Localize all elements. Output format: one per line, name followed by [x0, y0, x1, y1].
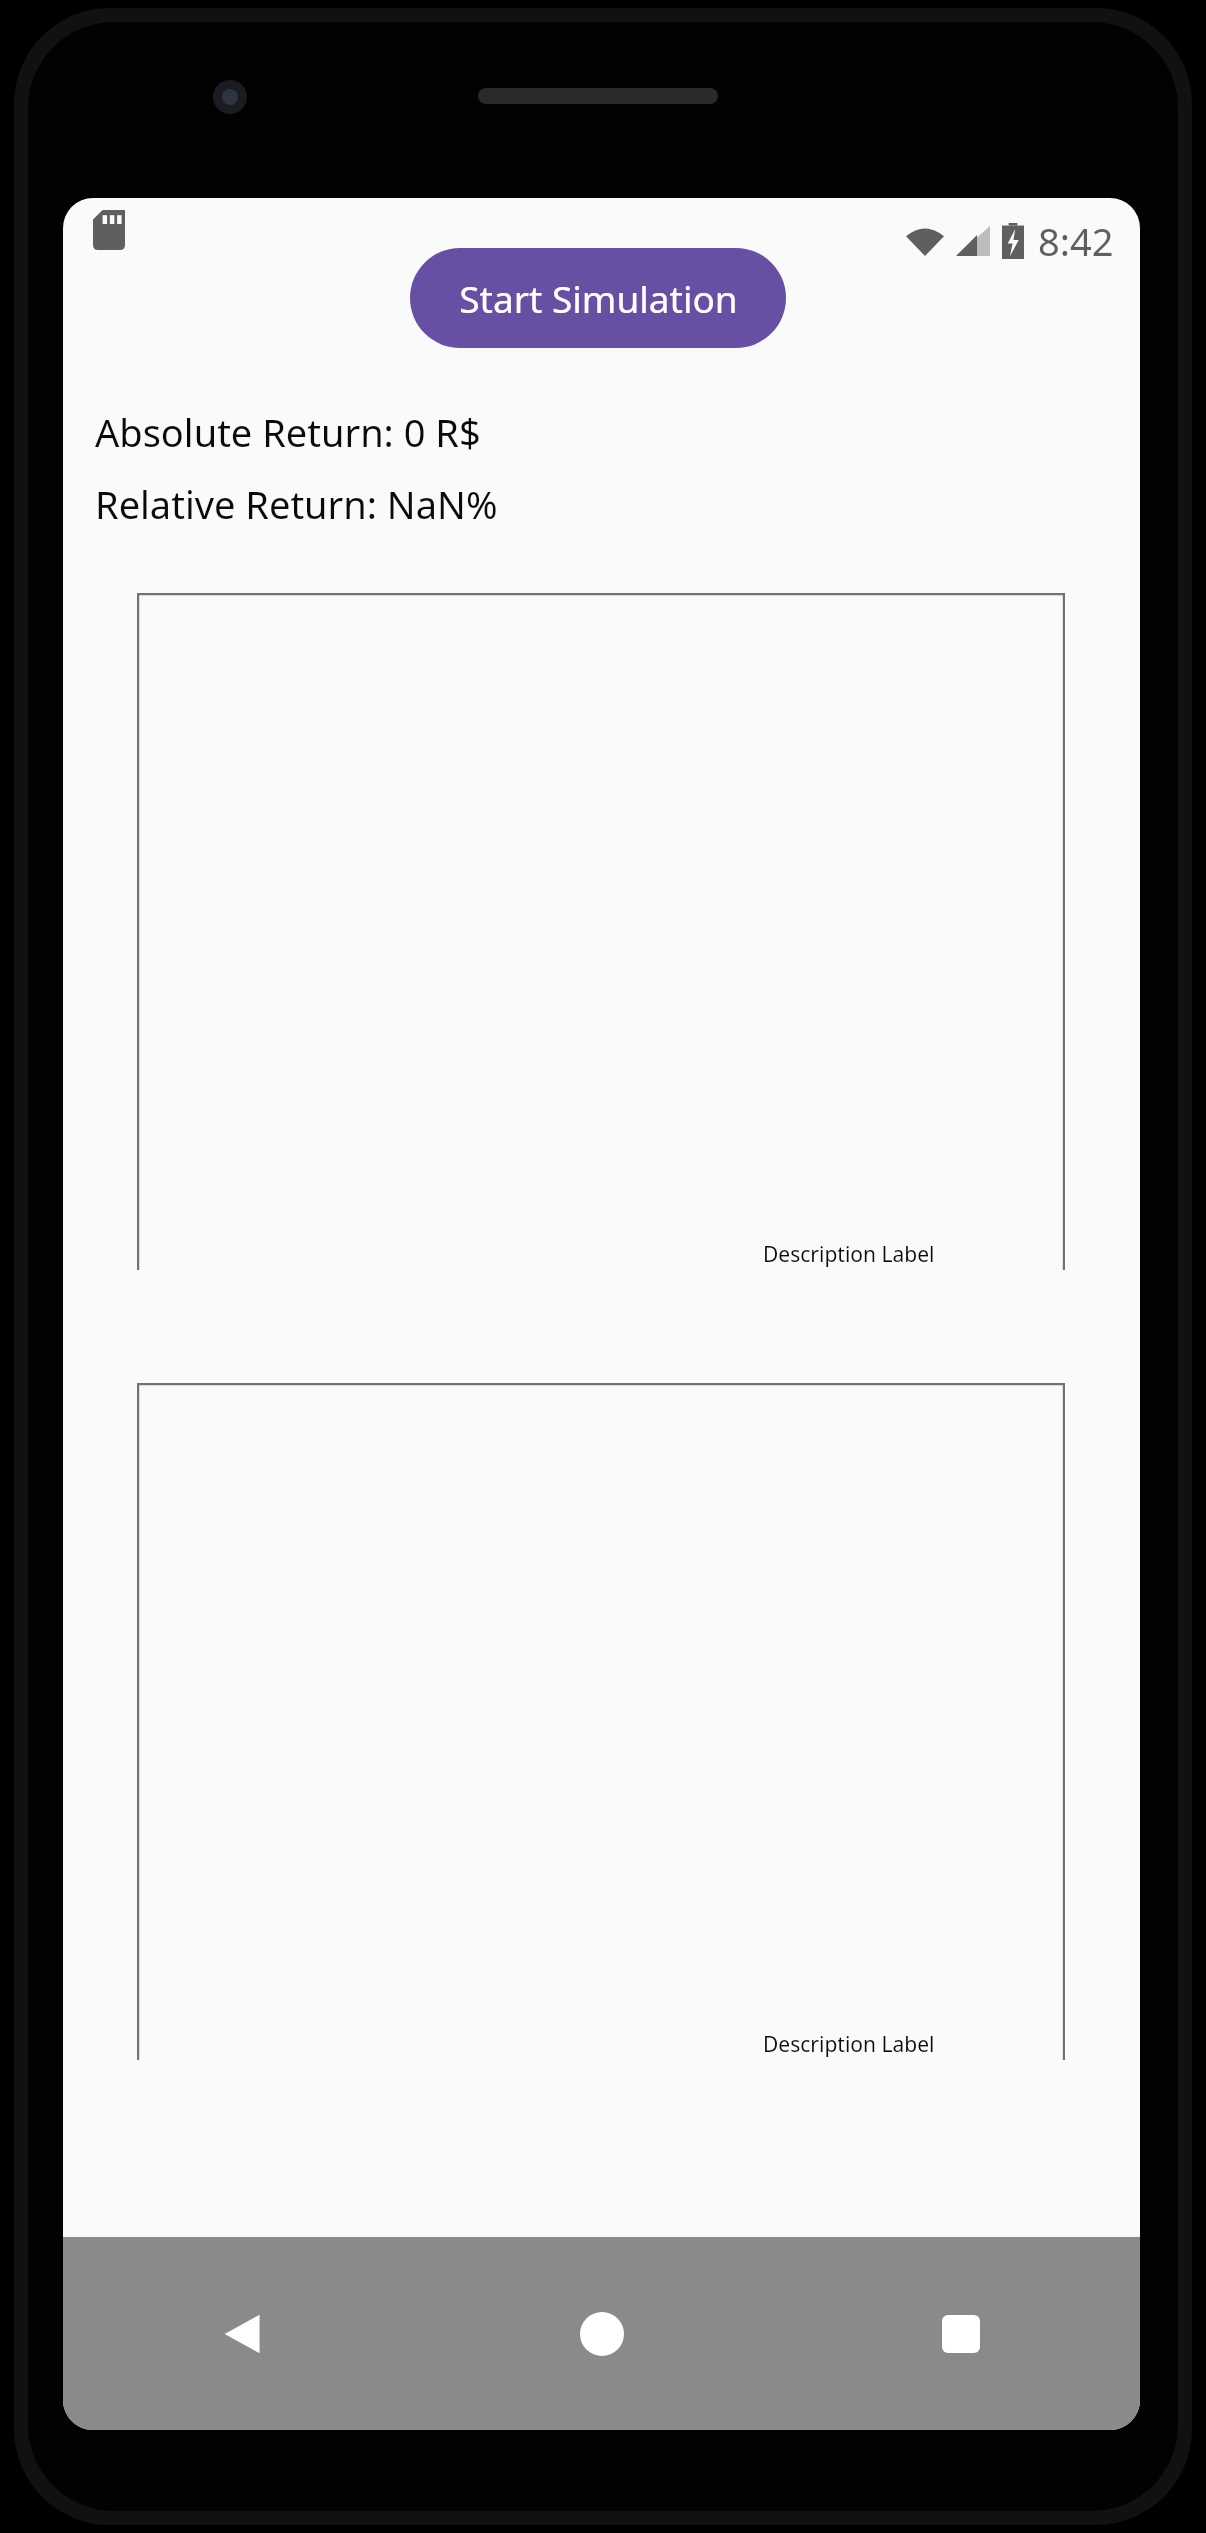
staticText: Description Label [763, 2030, 935, 2059]
button[interactable]: Start Simulation [410, 248, 786, 348]
button[interactable]: Back [63, 2237, 422, 2430]
staticText: Relative Return: NaN% [95, 478, 498, 530]
staticText: Start Simulation [459, 273, 738, 323]
staticText: 8:42 [1038, 215, 1114, 267]
staticText: Description Label [763, 1240, 935, 1269]
button[interactable]: Home [422, 2237, 781, 2430]
button[interactable]: Recent apps [781, 2237, 1140, 2430]
staticText: Absolute Return: 0 R$ [95, 406, 481, 458]
